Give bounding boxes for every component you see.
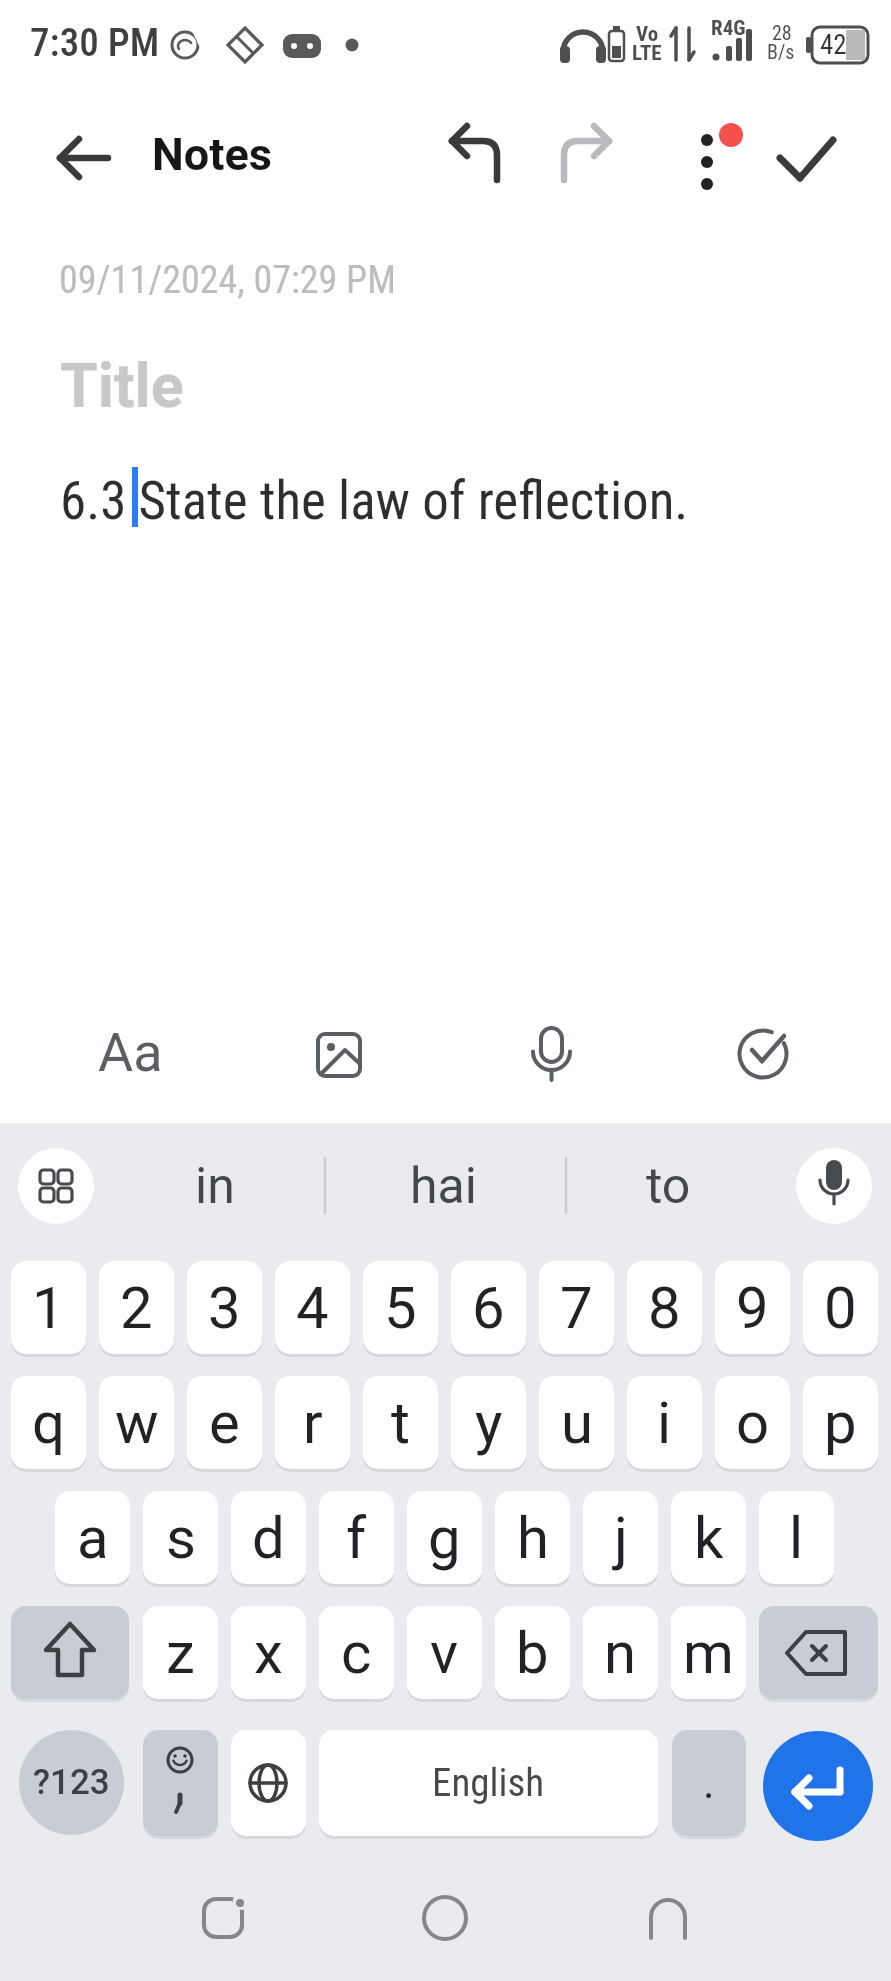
staticText: b [516, 1619, 549, 1687]
staticText: a [77, 1504, 109, 1572]
staticText: 7 [560, 1274, 593, 1342]
button[interactable]: 0 [803, 1261, 878, 1354]
staticText: 28 [772, 21, 792, 44]
button[interactable] [726, 1015, 806, 1095]
button[interactable] [40, 118, 130, 198]
button[interactable]: f [319, 1491, 394, 1584]
staticText: 09/11/2024, 07:29 PM [59, 258, 396, 303]
staticText: h [517, 1504, 549, 1572]
button[interactable]: 9 [715, 1261, 790, 1354]
staticText: LTE [632, 41, 662, 66]
button[interactable] [18, 1148, 94, 1224]
button[interactable] [672, 1730, 746, 1836]
staticText: y [475, 1389, 503, 1457]
button[interactable] [231, 1730, 306, 1836]
button[interactable] [545, 115, 635, 200]
button[interactable] [759, 1606, 878, 1699]
staticText: hai [410, 1157, 477, 1216]
button[interactable]: y [451, 1376, 526, 1469]
button[interactable]: j [583, 1491, 658, 1584]
staticText: 1 [32, 1274, 65, 1342]
button[interactable]: 4 [275, 1261, 350, 1354]
button[interactable] [85, 1015, 175, 1095]
button[interactable]: 3 [187, 1261, 262, 1354]
button[interactable] [513, 1015, 593, 1095]
button[interactable]: b [495, 1606, 570, 1699]
button[interactable]: u [539, 1376, 614, 1469]
staticText: d [252, 1504, 285, 1572]
staticText: 9 [736, 1274, 769, 1342]
staticText: 42 [820, 29, 847, 61]
staticText: x [254, 1619, 283, 1687]
staticText: u [561, 1389, 593, 1457]
button[interactable] [608, 1140, 728, 1232]
button[interactable]: i [627, 1376, 702, 1469]
staticText: Notes [152, 128, 272, 181]
button[interactable] [143, 1730, 218, 1836]
staticText: e [209, 1389, 240, 1457]
button[interactable] [765, 115, 855, 200]
staticText: R4G [711, 16, 746, 41]
button[interactable]: 5 [363, 1261, 438, 1354]
staticText: Vo [636, 22, 659, 47]
button[interactable]: z [143, 1606, 218, 1699]
button[interactable]: m [671, 1606, 746, 1699]
button[interactable]: r [275, 1376, 350, 1469]
staticText: r [303, 1389, 323, 1457]
button[interactable]: t [363, 1376, 438, 1469]
button[interactable]: c [319, 1606, 394, 1699]
staticText: 2 [120, 1274, 153, 1342]
button[interactable]: 8 [627, 1261, 702, 1354]
staticText: i [657, 1389, 672, 1457]
button[interactable]: o [715, 1376, 790, 1469]
button[interactable]: 1 [11, 1261, 86, 1354]
button[interactable]: a [55, 1491, 130, 1584]
staticText: g [428, 1504, 461, 1572]
button[interactable] [763, 1731, 873, 1841]
staticText: in [195, 1157, 235, 1216]
staticText: n [604, 1619, 637, 1687]
staticText: k [694, 1504, 724, 1572]
staticText: . [703, 1757, 715, 1809]
staticText: q [32, 1389, 65, 1457]
button[interactable]: k [671, 1491, 746, 1584]
button[interactable] [11, 1606, 129, 1699]
staticText: j [614, 1504, 628, 1572]
button[interactable]: v [407, 1606, 482, 1699]
button[interactable]: s [143, 1491, 218, 1584]
staticText: c [341, 1619, 372, 1687]
staticText: o [736, 1389, 770, 1457]
button[interactable]: x [231, 1606, 306, 1699]
staticText: l [789, 1504, 804, 1572]
staticText: 0 [824, 1274, 857, 1342]
button[interactable]: d [231, 1491, 306, 1584]
button[interactable]: w [99, 1376, 174, 1469]
button[interactable] [630, 1890, 706, 1950]
button[interactable] [185, 1890, 261, 1950]
button[interactable]: 2 [99, 1261, 174, 1354]
button[interactable] [155, 1140, 275, 1232]
button[interactable] [796, 1148, 872, 1224]
button[interactable] [383, 1140, 503, 1232]
button[interactable] [665, 115, 750, 200]
button[interactable]: q [11, 1376, 86, 1469]
button[interactable]: g [407, 1491, 482, 1584]
staticText: 3 [208, 1274, 241, 1342]
staticText: f [346, 1504, 367, 1572]
button[interactable] [407, 1890, 483, 1950]
button[interactable]: p [803, 1376, 878, 1469]
button[interactable]: n [583, 1606, 658, 1699]
button[interactable]: 6 [451, 1261, 526, 1354]
button[interactable]: e [187, 1376, 262, 1469]
button[interactable]: l [759, 1491, 834, 1584]
button[interactable]: 7 [539, 1261, 614, 1354]
button[interactable]: h [495, 1491, 570, 1584]
staticText: v [430, 1619, 459, 1687]
staticText: s [166, 1504, 196, 1572]
button[interactable] [300, 1015, 380, 1095]
button[interactable] [319, 1730, 658, 1836]
staticText: t [391, 1389, 410, 1457]
button[interactable] [430, 115, 520, 200]
button[interactable] [19, 1730, 124, 1835]
staticText: 5 [384, 1274, 417, 1342]
